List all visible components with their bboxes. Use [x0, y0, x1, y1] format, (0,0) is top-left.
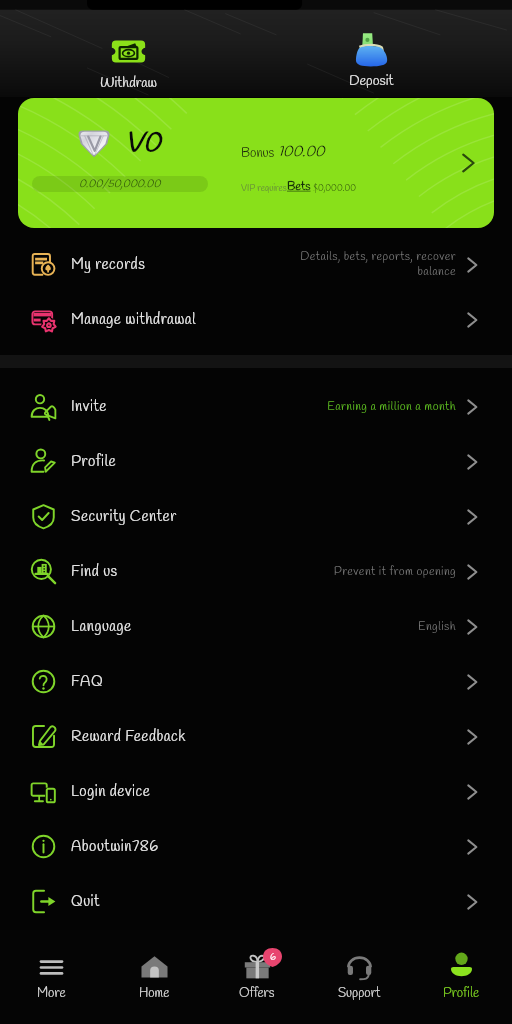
button[interactable]: Support	[308, 930, 410, 1002]
button[interactable]: Deposit	[327, 31, 415, 91]
button[interactable]: Find us	[0, 544, 512, 599]
staticText: 0.00/50,000.00	[79, 177, 161, 192]
staticText: Withdraw	[100, 74, 157, 93]
staticText: V0	[125, 126, 161, 162]
staticText: 6	[270, 951, 276, 964]
staticText: Manage withdrawal	[71, 310, 197, 330]
button[interactable]: Security Center	[0, 489, 512, 544]
staticText: Support	[338, 985, 381, 1002]
button[interactable]: Home	[103, 930, 206, 1002]
button[interactable]: Login device	[0, 764, 512, 819]
staticText: Offers	[239, 985, 275, 1002]
button[interactable]: Manage withdrawal	[0, 292, 512, 347]
staticText: $0,000.00	[311, 183, 357, 195]
staticText: Quit	[71, 892, 100, 912]
staticText: More	[37, 985, 66, 1002]
button[interactable]: My records	[0, 237, 512, 292]
staticText: Reward Feedback	[71, 727, 186, 747]
button[interactable]: Profile	[410, 930, 512, 1002]
button[interactable]: Aboutwin786	[0, 819, 512, 874]
button[interactable]: Invite	[0, 379, 512, 434]
button[interactable]: FAQ	[0, 654, 512, 709]
staticText: Profile	[443, 985, 480, 1002]
staticText: Details, bets, reports, recover balance	[298, 249, 456, 280]
staticText: Invite	[71, 397, 107, 417]
staticText: VIP requires	[241, 183, 287, 195]
staticText: Language	[71, 617, 132, 637]
staticText: Deposit	[349, 72, 394, 91]
button[interactable]: V0	[18, 98, 494, 228]
staticText: Bets	[287, 179, 311, 195]
button[interactable]: 6	[206, 930, 308, 1002]
staticText: English	[418, 619, 456, 635]
button[interactable]: Reward Feedback	[0, 709, 512, 764]
button[interactable]: Profile	[0, 434, 512, 489]
staticText: Earning a million a month	[327, 399, 456, 415]
staticText: Bonus	[241, 145, 278, 162]
staticText: Profile	[71, 452, 117, 472]
staticText: Security Center	[71, 507, 177, 527]
staticText: FAQ	[71, 672, 104, 692]
staticText: My records	[71, 255, 146, 275]
staticText: Find us	[71, 562, 118, 582]
button[interactable]: Withdraw	[84, 33, 172, 93]
staticText: 100.00	[278, 142, 325, 162]
staticText: Home	[139, 985, 170, 1002]
button[interactable]: More	[0, 930, 103, 1002]
staticText: Aboutwin786	[71, 837, 159, 857]
button[interactable]: Language	[0, 599, 512, 654]
button[interactable]: Quit	[0, 874, 512, 929]
staticText: Login device	[71, 782, 151, 802]
staticText: Prevent it from opening	[333, 564, 456, 580]
